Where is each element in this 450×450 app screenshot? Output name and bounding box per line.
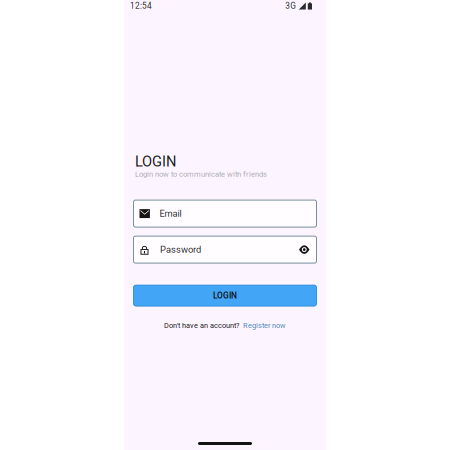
staticText: 3G xyxy=(285,1,296,11)
button[interactable]: Password xyxy=(133,236,316,263)
staticText: Don't have an account? xyxy=(164,321,239,330)
staticText: 12:54 xyxy=(130,1,152,11)
button[interactable]: LOGIN xyxy=(133,285,316,306)
staticText: Email xyxy=(159,208,181,219)
staticText: Login now to communicate with friends xyxy=(135,170,267,179)
staticText: Password xyxy=(160,244,201,255)
staticText: LOGIN xyxy=(213,291,237,300)
button[interactable]: Email xyxy=(133,200,316,227)
button[interactable]: Register now xyxy=(243,321,286,330)
staticText: Register now xyxy=(243,321,286,330)
button[interactable]: Show password xyxy=(296,240,312,259)
staticText: LOGIN xyxy=(135,153,176,170)
